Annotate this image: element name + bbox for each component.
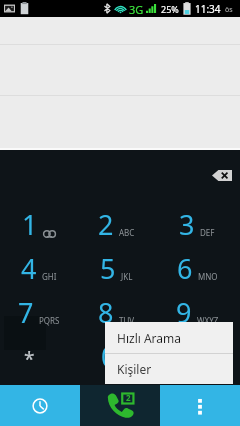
button[interactable]: 2 xyxy=(80,202,160,246)
staticText: JKL xyxy=(121,271,133,282)
staticText: 7 xyxy=(18,294,34,331)
staticText: 6 xyxy=(177,250,193,287)
button[interactable]: 4 xyxy=(0,246,80,290)
staticText: 4 xyxy=(21,250,37,287)
staticText: 2 xyxy=(98,206,114,243)
staticText: 9 xyxy=(176,294,192,331)
staticText: 11:34 xyxy=(195,2,221,16)
button[interactable]: Backspace xyxy=(208,165,236,185)
staticText: 1 xyxy=(22,206,38,243)
staticText: WXYZ xyxy=(197,315,219,326)
staticText: + xyxy=(122,359,127,370)
button[interactable]: 1 xyxy=(0,202,80,246)
staticText: Kişiler xyxy=(117,361,152,377)
button[interactable]: 6 xyxy=(160,246,240,290)
button[interactable]: * xyxy=(0,334,80,378)
button[interactable]: Kişiler xyxy=(105,354,233,384)
button[interactable]: Hızlı Arama xyxy=(105,322,233,353)
staticText: Hızlı Arama xyxy=(117,330,182,346)
staticText: * xyxy=(24,346,35,372)
staticText: 25% xyxy=(161,3,179,15)
staticText: GHI xyxy=(42,271,57,282)
staticText: 8 xyxy=(98,294,114,331)
staticText: ABC xyxy=(119,227,135,238)
staticText: TUV xyxy=(119,315,135,326)
button[interactable]: 0 xyxy=(80,334,160,378)
button[interactable]: 8 xyxy=(80,290,160,334)
button[interactable]: 5 xyxy=(80,246,160,290)
staticText: 0 xyxy=(101,338,117,375)
button[interactable]: More options xyxy=(160,385,240,426)
button[interactable]: Dialer xyxy=(80,385,160,426)
staticText: 3 xyxy=(179,206,195,243)
staticText: PQRS xyxy=(39,315,60,326)
button[interactable]: 7 xyxy=(0,290,80,334)
staticText: 5 xyxy=(100,250,116,287)
staticText: MNO xyxy=(198,271,218,282)
staticText: ös xyxy=(225,5,233,15)
button[interactable]: 9 xyxy=(160,290,240,334)
staticText: # xyxy=(181,346,194,372)
staticText: DEF xyxy=(200,227,215,238)
staticText: 3G xyxy=(129,2,144,17)
button[interactable]: Recents xyxy=(0,385,80,426)
button[interactable]: # xyxy=(160,334,240,378)
button[interactable]: 3 xyxy=(160,202,240,246)
staticText: 2 xyxy=(126,392,131,403)
